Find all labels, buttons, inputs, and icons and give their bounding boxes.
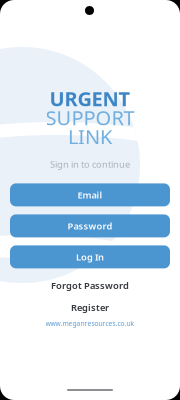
staticText: URGENT bbox=[49, 85, 130, 112]
staticText: Forgot Password bbox=[51, 279, 129, 292]
staticText: Register bbox=[71, 301, 109, 314]
button[interactable]: Register bbox=[10, 301, 170, 313]
staticText: LINK bbox=[68, 123, 112, 150]
button[interactable]: www.meganresources.co.uk bbox=[10, 318, 170, 328]
staticText: www.meganresources.co.uk bbox=[45, 319, 134, 328]
staticText: Password bbox=[67, 220, 112, 232]
button[interactable]: Log In bbox=[10, 245, 170, 268]
button[interactable]: Password bbox=[10, 214, 170, 237]
staticText: Sign in to continue bbox=[50, 158, 130, 170]
staticText: Log In bbox=[76, 251, 104, 263]
staticText: Email bbox=[77, 189, 102, 201]
staticText: SUPPORT bbox=[45, 104, 134, 131]
button[interactable]: Email bbox=[10, 183, 170, 206]
button[interactable]: Forgot Password bbox=[10, 279, 170, 291]
